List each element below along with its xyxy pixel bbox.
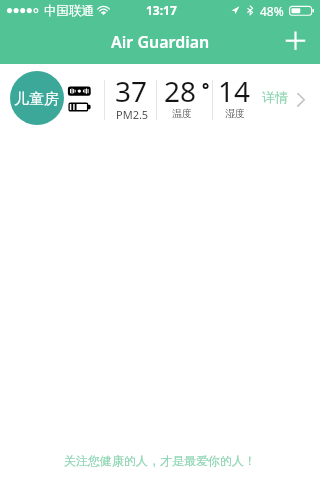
button[interactable]: Add device	[276, 20, 320, 64]
staticText: 48%	[260, 3, 284, 19]
staticText: 湿度	[225, 107, 245, 120]
staticText: 中国联通	[44, 3, 94, 19]
staticText: 温度	[172, 107, 192, 120]
staticText: 14	[218, 72, 251, 110]
staticText: 28	[164, 72, 197, 110]
staticText: 37	[115, 72, 148, 110]
staticText: Air Guardian	[111, 31, 210, 53]
staticText: 关注您健康的人，才是最爱你的人！	[0, 453, 320, 468]
button[interactable]: 儿童房	[0, 64, 320, 130]
staticText: PM2.5	[116, 107, 149, 122]
staticText: 儿童房	[14, 90, 59, 109]
staticText: 13:17	[146, 2, 177, 18]
staticText: 详情	[262, 89, 288, 105]
button[interactable]: 详情	[262, 86, 307, 108]
